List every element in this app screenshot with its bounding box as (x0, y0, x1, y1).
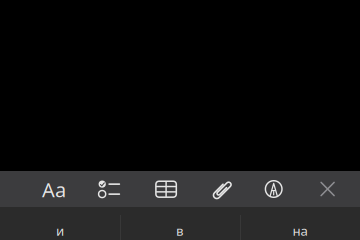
staticText: на (292, 222, 307, 239)
button[interactable]: в (120, 207, 240, 240)
button[interactable]: на (240, 207, 360, 240)
button[interactable]: и (0, 207, 120, 240)
staticText: Aa (42, 176, 66, 203)
staticText: в (176, 222, 184, 239)
staticText: и (56, 222, 64, 239)
